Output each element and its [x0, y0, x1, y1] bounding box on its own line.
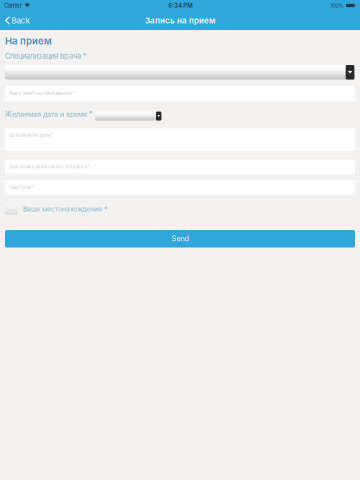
- button[interactable]: Send: [5, 230, 355, 247]
- staticText: Запись на прием: [145, 16, 215, 25]
- staticText: Специализация врача *: [5, 51, 87, 60]
- staticText: Желаемая дата и время *: [5, 110, 93, 118]
- button[interactable]: Ваш номер мобильного телефона *: [5, 159, 355, 174]
- staticText: Ваше местонахождение *: [23, 205, 107, 213]
- staticText: Ваш номер мобильного телефона *: [10, 164, 90, 169]
- staticText: 6:34 PM: [168, 2, 192, 9]
- staticText: Ваше ИмяОтчествоФамилия *: [10, 91, 75, 96]
- staticText: Back: [12, 16, 30, 25]
- staticText: Ваш Email *: [10, 185, 34, 190]
- button[interactable]: Back: [0, 11, 34, 30]
- staticText: Цель визита к врачу *: [10, 132, 54, 138]
- button[interactable]: Select: [95, 111, 162, 120]
- staticText: Carrier: [4, 2, 22, 9]
- staticText: 100%: [330, 2, 343, 9]
- button[interactable]: Select: [5, 65, 355, 79]
- button[interactable]: Ваше ИмяОтчествоФамилия *: [5, 86, 355, 101]
- staticText: Send: [171, 234, 188, 243]
- button[interactable]: Ваше местонахождение *: [5, 203, 355, 215]
- staticText: На прием: [5, 35, 52, 47]
